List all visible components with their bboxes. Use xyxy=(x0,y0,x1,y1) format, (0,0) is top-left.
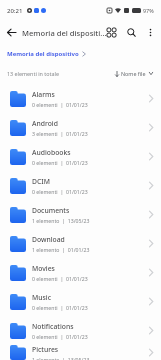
staticText: Alarms xyxy=(32,90,55,99)
staticText: 1 elemento | 13/05/23 xyxy=(32,217,90,224)
staticText: Android xyxy=(32,119,58,128)
staticText: 1 elemento | 13/05/23 xyxy=(32,356,90,360)
button[interactable]: Nome file xyxy=(115,70,153,77)
staticText: Memoria del dispositi... xyxy=(22,28,107,38)
staticText: 0 elementi | 01/01/23 xyxy=(32,275,88,282)
button[interactable] xyxy=(147,28,154,37)
button[interactable]: Notifications xyxy=(0,316,161,345)
staticText: 1 elemento | 01/01/23 xyxy=(32,246,90,253)
button[interactable]: Audiobooks xyxy=(0,142,161,171)
button[interactable]: Alarms xyxy=(0,84,161,113)
staticText: 0 elementi | 01/01/23 xyxy=(32,304,88,311)
button[interactable]: Download xyxy=(0,229,161,258)
button[interactable] xyxy=(127,28,136,37)
staticText: 0 elementi | 01/01/23 xyxy=(32,188,88,195)
button[interactable]: Android xyxy=(0,113,161,142)
staticText: Music xyxy=(32,293,51,302)
staticText: Documents xyxy=(32,206,70,215)
button[interactable]: Documents xyxy=(0,200,161,229)
staticText: 97% xyxy=(143,7,154,14)
staticText: DCIM xyxy=(32,177,50,186)
staticText: 0 elementi | 01/01/23 xyxy=(32,159,88,166)
staticText: Memoria del dispositivo xyxy=(7,50,79,58)
staticText: Pictures xyxy=(32,345,59,354)
button[interactable]: DCIM xyxy=(0,171,161,200)
staticText: Movies xyxy=(32,264,55,273)
button[interactable] xyxy=(107,28,116,37)
button[interactable]: Memoria del dispositivo xyxy=(7,49,86,59)
staticText: Audiobooks xyxy=(32,148,71,157)
staticText: 3 elementi | 01/01/23 xyxy=(32,130,88,137)
staticText: Notifications xyxy=(32,322,74,331)
staticText: 0 elementi | 01/01/23 xyxy=(32,101,88,108)
staticText: 20:21 xyxy=(7,7,23,15)
button[interactable]: Music xyxy=(0,287,161,316)
button[interactable] xyxy=(7,28,16,37)
button[interactable]: Pictures xyxy=(0,345,161,360)
button[interactable]: Movies xyxy=(0,258,161,287)
staticText: Download xyxy=(32,235,65,244)
staticText: 0 elementi | 01/01/23 xyxy=(32,333,88,340)
staticText: Nome file xyxy=(121,70,146,77)
staticText: 13 elementi in totale xyxy=(7,70,59,77)
